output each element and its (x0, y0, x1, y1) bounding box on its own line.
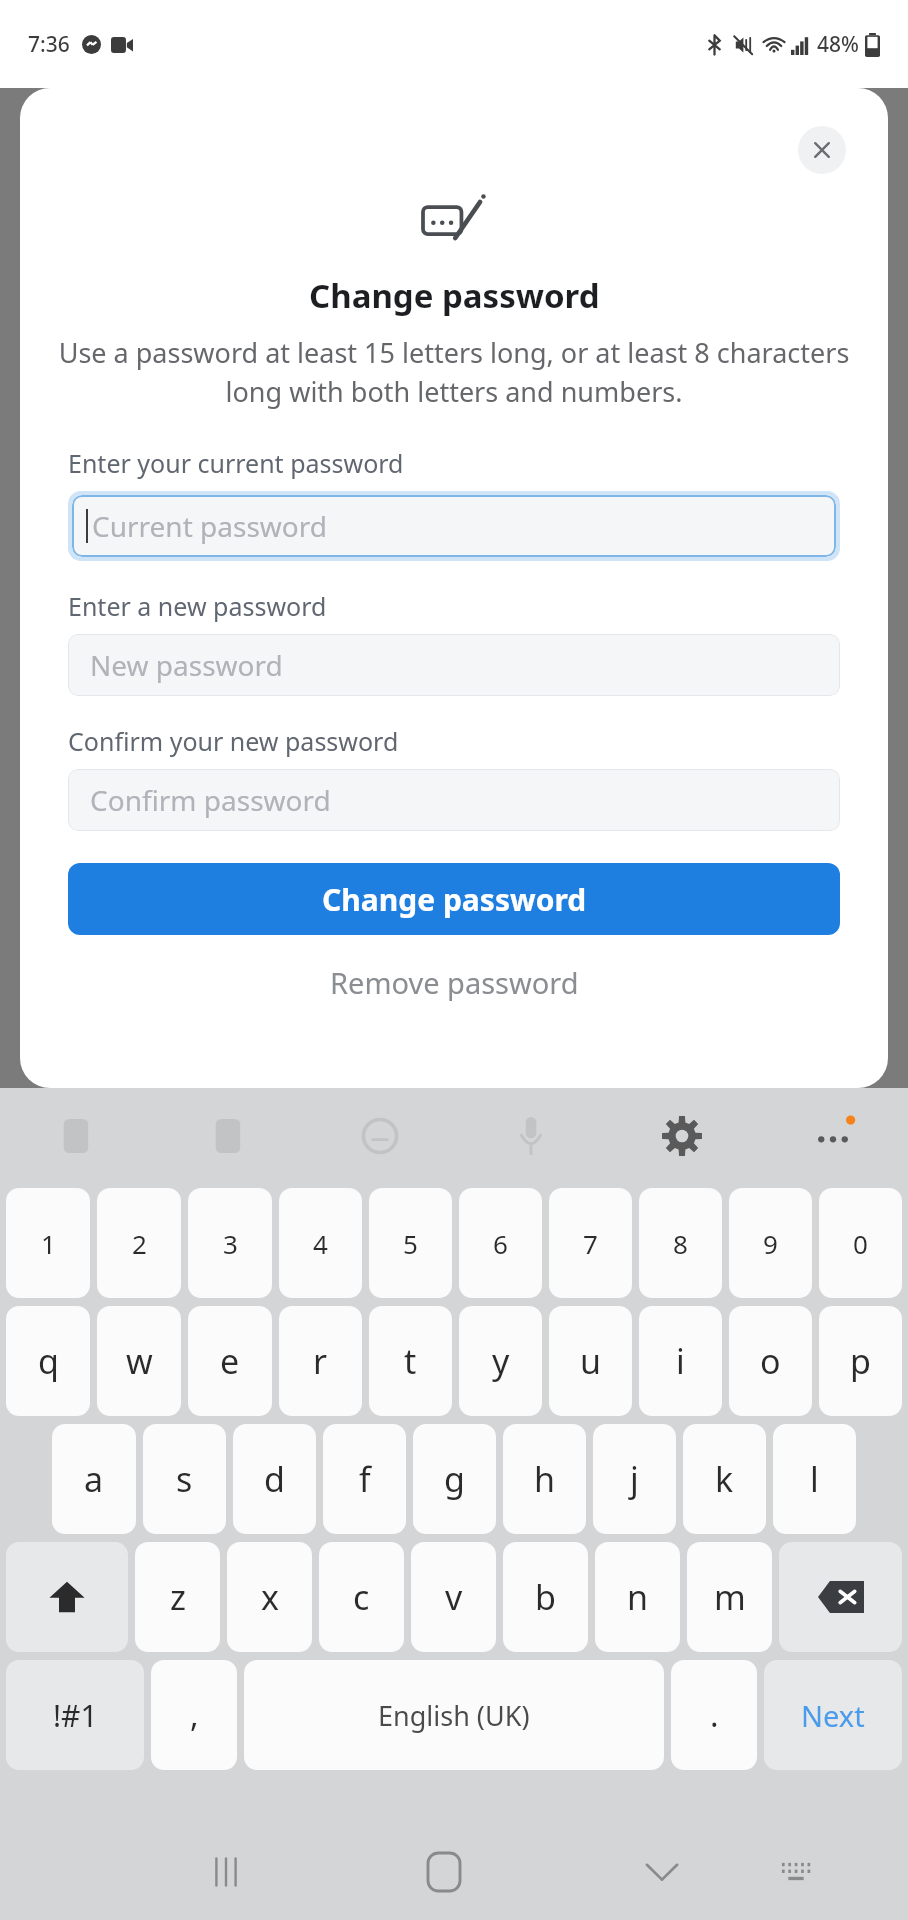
staticText: i (676, 1338, 685, 1384)
button[interactable]: New password (68, 634, 840, 696)
button[interactable]: n (595, 1542, 680, 1652)
staticText: a (84, 1456, 104, 1502)
staticText: z (170, 1574, 186, 1620)
button[interactable]: Keyboard (732, 1824, 859, 1920)
button[interactable]: l (773, 1424, 856, 1534)
button[interactable]: u (549, 1306, 632, 1416)
button[interactable]: sticker (0, 1088, 152, 1184)
button[interactable]: 7 (549, 1188, 632, 1298)
button[interactable]: c (319, 1542, 404, 1652)
button[interactable]: Close (798, 126, 846, 174)
staticText: Confirm your new password (68, 724, 399, 758)
button[interactable]: , (151, 1660, 237, 1770)
button[interactable]: Confirm password (68, 769, 840, 831)
staticText: n (627, 1574, 649, 1620)
button[interactable]: e (188, 1306, 272, 1416)
staticText: Re (30, 317, 63, 354)
button[interactable]: Current password (72, 495, 836, 557)
button[interactable]: a (52, 1424, 136, 1534)
button[interactable]: x (227, 1542, 312, 1652)
button[interactable]: s (143, 1424, 226, 1534)
button[interactable]: f (323, 1424, 406, 1534)
staticText: Change password (309, 273, 600, 318)
staticText: 2 (132, 1226, 147, 1261)
staticText: l (810, 1456, 819, 1502)
button[interactable]: p (819, 1306, 902, 1416)
staticText: Confirm password (90, 781, 331, 819)
staticText: , (190, 1693, 199, 1737)
staticText: f (359, 1456, 371, 1502)
button[interactable]: gif (152, 1088, 304, 1184)
staticText: Next (801, 1696, 865, 1735)
staticText: Change password (322, 879, 587, 920)
button[interactable]: w (97, 1306, 181, 1416)
button[interactable]: 3 (188, 1188, 272, 1298)
button[interactable]: b (503, 1542, 588, 1652)
button[interactable]: Recents (155, 1824, 296, 1920)
button[interactable]: English (UK) (244, 1660, 664, 1770)
button[interactable]: . (671, 1660, 757, 1770)
button[interactable]: h (503, 1424, 586, 1534)
staticText: b (535, 1574, 556, 1620)
button[interactable]: g (413, 1424, 496, 1534)
button[interactable]: o (729, 1306, 812, 1416)
button[interactable]: Shift (6, 1542, 128, 1652)
staticText: s (176, 1456, 193, 1502)
staticText: t (404, 1338, 417, 1384)
staticText: x (261, 1574, 279, 1620)
button[interactable]: m (687, 1542, 772, 1652)
staticText: p (850, 1338, 871, 1384)
button[interactable]: Next (764, 1660, 902, 1770)
staticText: ne (835, 118, 878, 164)
button[interactable]: gear (606, 1088, 757, 1184)
button[interactable]: d (233, 1424, 316, 1534)
staticText: New password (90, 646, 283, 684)
button[interactable]: !#1 (6, 1660, 144, 1770)
button[interactable]: Back (591, 1824, 732, 1920)
button[interactable]: z (135, 1542, 220, 1652)
button[interactable]: more (757, 1088, 908, 1184)
button[interactable]: 5 (369, 1188, 452, 1298)
button[interactable]: q (6, 1306, 90, 1416)
button[interactable]: 8 (639, 1188, 722, 1298)
button[interactable]: r (279, 1306, 362, 1416)
button[interactable]: 1 (6, 1188, 90, 1298)
staticText: 48% (817, 30, 859, 59)
staticText: 4 (313, 1226, 328, 1261)
button[interactable]: 4 (279, 1188, 362, 1298)
button[interactable]: 9 (729, 1188, 812, 1298)
button[interactable]: t (369, 1306, 452, 1416)
button[interactable]: k (683, 1424, 766, 1534)
staticText: Enter your current password (68, 446, 404, 480)
button[interactable]: j (593, 1424, 676, 1534)
staticText: e (220, 1338, 240, 1384)
button[interactable]: i (639, 1306, 722, 1416)
staticText: 3 (223, 1226, 238, 1261)
staticText: k (715, 1456, 734, 1502)
staticText: Enter a new password (68, 589, 327, 623)
button[interactable]: v (411, 1542, 496, 1652)
staticText: 8 (673, 1226, 688, 1261)
staticText: m (714, 1574, 746, 1620)
staticText: 6 (493, 1226, 508, 1261)
button[interactable]: Remove password (68, 953, 840, 1011)
staticText: d (264, 1456, 285, 1502)
button[interactable]: Home (373, 1824, 514, 1920)
staticText: v (445, 1574, 463, 1620)
button[interactable]: y (459, 1306, 542, 1416)
button[interactable]: 2 (97, 1188, 181, 1298)
button[interactable]: Change password (68, 863, 840, 935)
button[interactable]: 0 (819, 1188, 902, 1298)
button[interactable]: 6 (459, 1188, 542, 1298)
button[interactable]: Backspace (779, 1542, 902, 1652)
staticText: Current password (92, 507, 327, 545)
staticText: 1 (41, 1226, 56, 1261)
